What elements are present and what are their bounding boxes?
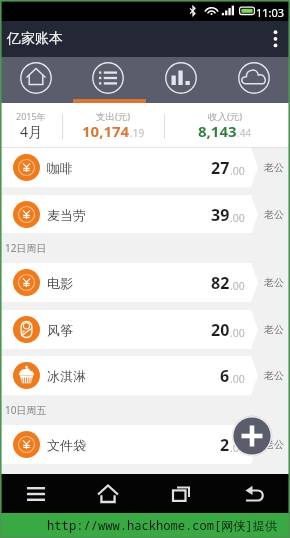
staticText: http://www.hackhome.com[网侠]提供 — [47, 517, 277, 534]
staticText: 4月 — [20, 122, 43, 141]
button[interactable]: Add record — [231, 415, 273, 457]
staticText: 老公 — [264, 323, 284, 336]
staticText: 10,174 — [82, 121, 130, 141]
staticText: .00 — [230, 211, 245, 225]
staticText: 咖啡 — [47, 160, 73, 176]
staticText: 风筝 — [47, 322, 73, 338]
staticText: .44 — [237, 126, 252, 140]
button[interactable]: 风筝 — [0, 310, 290, 349]
staticText: 27 — [211, 157, 230, 179]
button[interactable]: Menu — [0, 474, 72, 513]
button[interactable]: Home — [0, 57, 72, 99]
staticText: 老公 — [264, 276, 284, 289]
button[interactable]: 文件袋 — [0, 425, 290, 464]
button[interactable]: 麦当劳 — [0, 195, 290, 234]
button[interactable]: Records — [72, 57, 144, 99]
button[interactable]: Cloud — [217, 57, 290, 99]
staticText: .19 — [130, 126, 145, 140]
staticText: 6 — [220, 365, 230, 387]
staticText: 10日周五 — [5, 403, 47, 417]
staticText: 老公 — [264, 161, 284, 174]
staticText: .00 — [230, 372, 245, 386]
staticText: .00 — [230, 164, 245, 178]
staticText: 2 — [220, 434, 230, 456]
button[interactable]: More options — [260, 21, 290, 57]
staticText: 8,143 — [198, 121, 237, 141]
staticText: 老公 — [264, 369, 284, 382]
staticText: 老公 — [264, 208, 284, 221]
staticText: 麦当劳 — [47, 207, 86, 223]
staticText: 文件袋 — [47, 437, 86, 453]
staticText: 39 — [211, 204, 230, 226]
staticText: 亿家账本 — [7, 30, 63, 48]
button[interactable]: 咖啡 — [0, 148, 290, 187]
staticText: 20 — [211, 319, 230, 341]
staticText: 82 — [211, 272, 230, 294]
staticText: 支出(元) — [96, 110, 131, 123]
button[interactable]: Home — [72, 474, 144, 513]
button[interactable]: Back — [217, 474, 290, 513]
button[interactable]: 冰淇淋 — [0, 356, 290, 395]
staticText: 12日周日 — [5, 241, 47, 255]
button[interactable]: Charts — [144, 57, 217, 99]
staticText: 老公 — [264, 438, 284, 451]
staticText: 电影 — [47, 275, 73, 291]
button[interactable]: Recents — [144, 474, 217, 513]
staticText: 冰淇淋 — [47, 368, 86, 384]
staticText: 收入(元) — [208, 110, 243, 123]
staticText: 11:03 — [256, 5, 285, 20]
staticText: .00 — [230, 441, 245, 455]
staticText: 2015年 — [16, 110, 46, 122]
staticText: .00 — [230, 279, 245, 293]
button[interactable]: 电影 — [0, 263, 290, 302]
staticText: .00 — [230, 326, 245, 340]
